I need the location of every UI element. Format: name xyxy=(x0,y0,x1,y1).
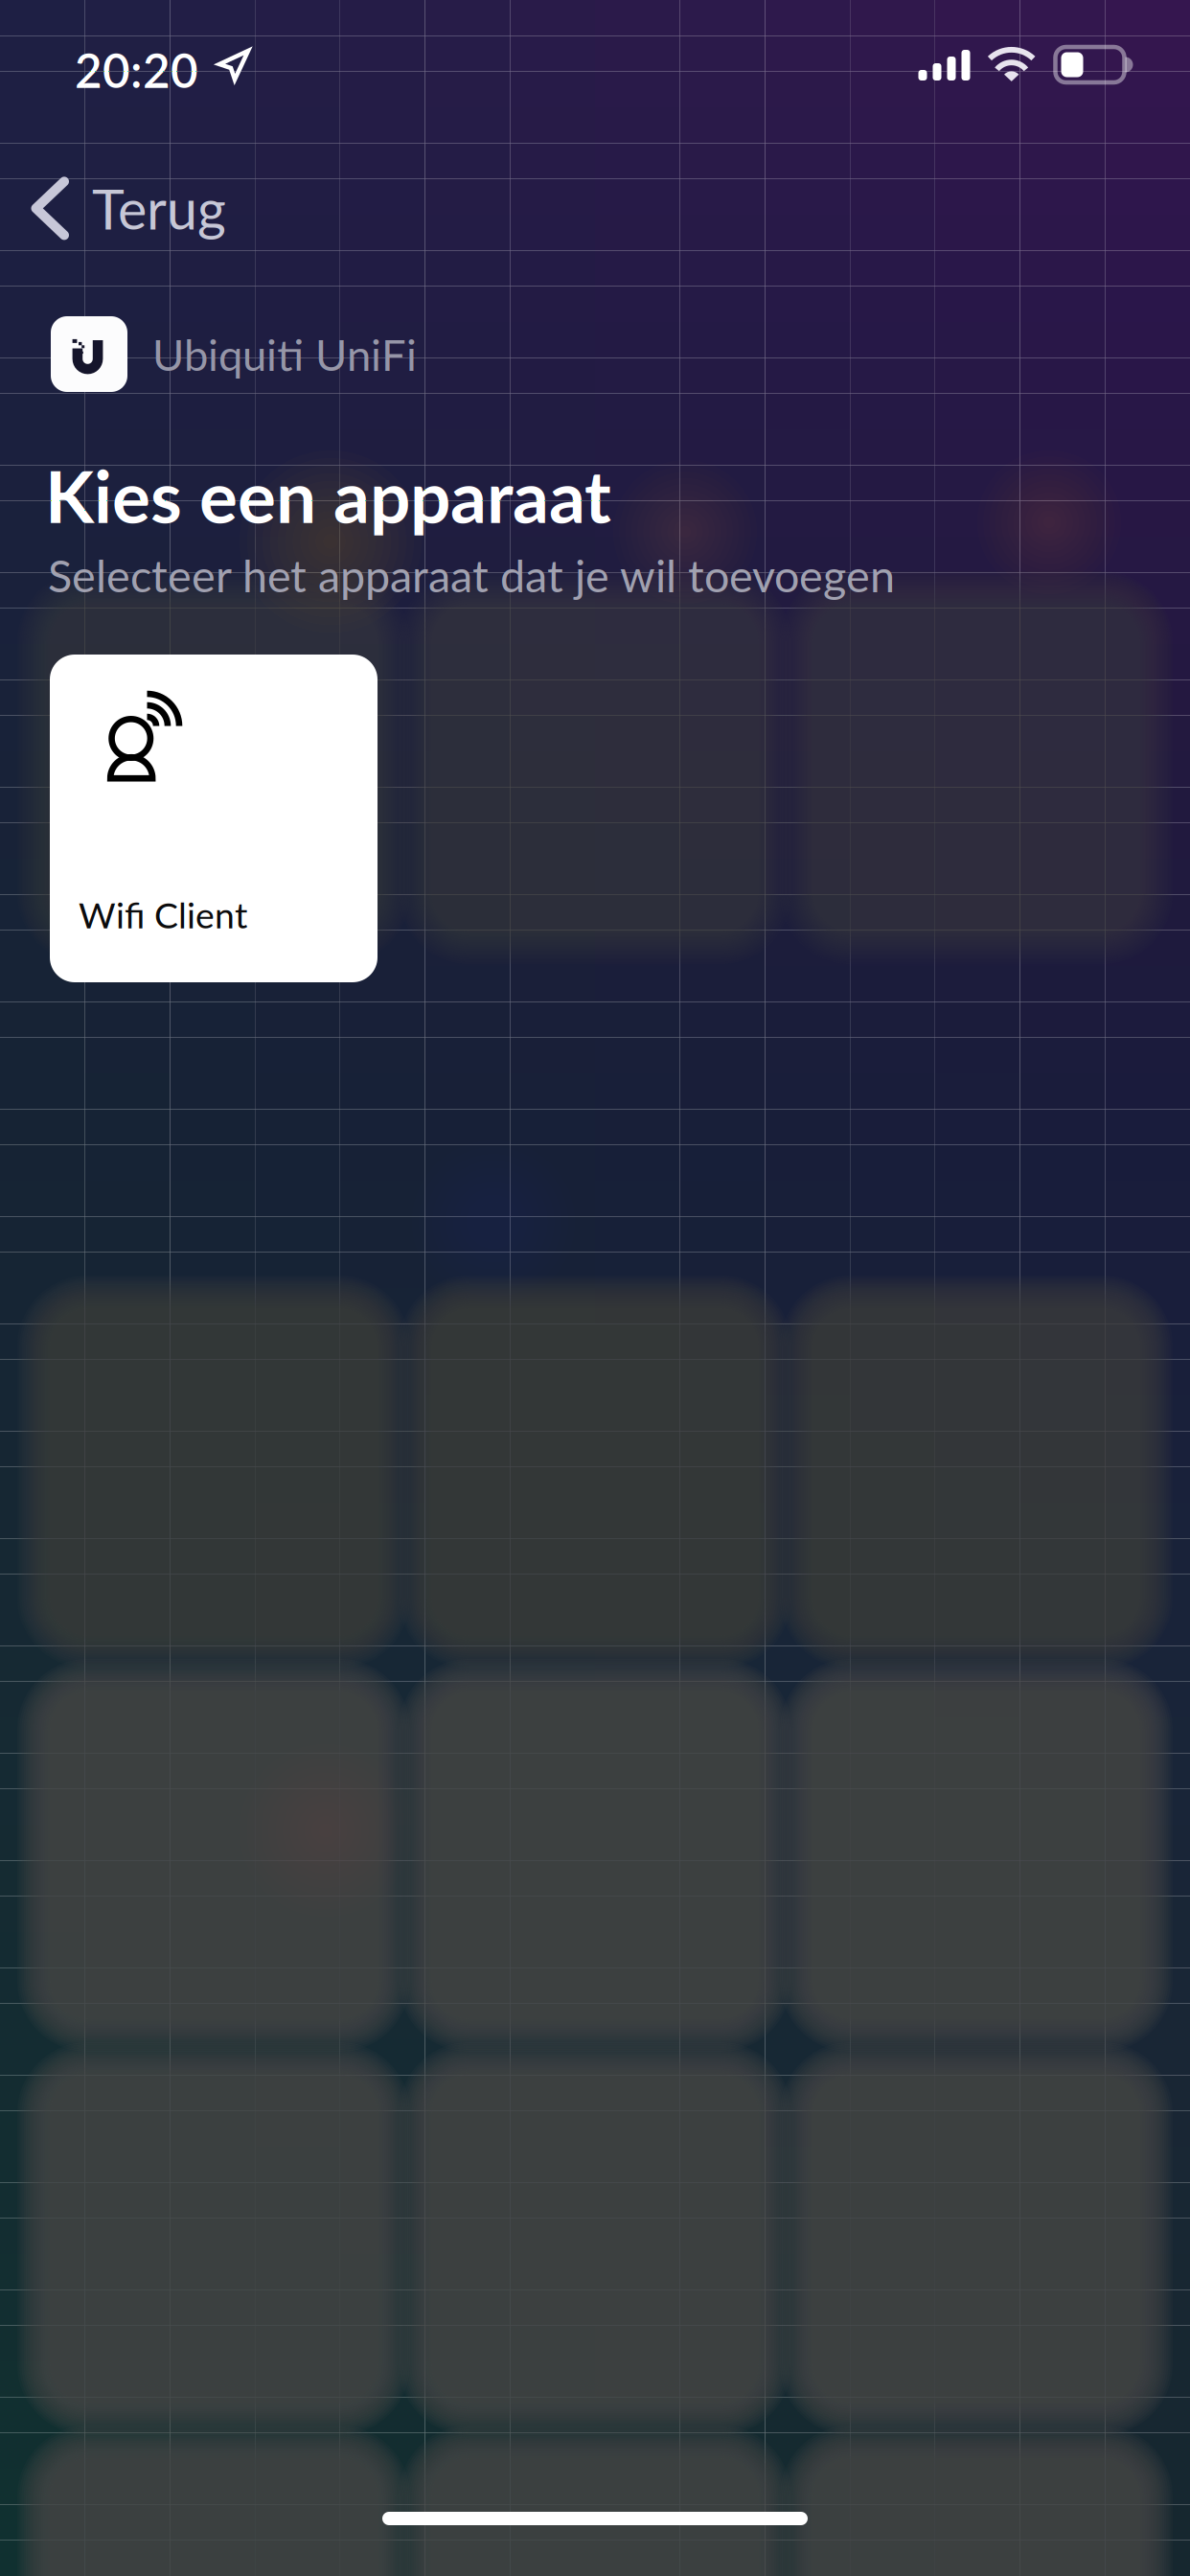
staticText: 20:20 xyxy=(75,41,198,98)
staticText: Kies een apparaat xyxy=(45,452,611,538)
staticText: Wifi Client xyxy=(79,893,247,936)
button[interactable]: Terug xyxy=(0,154,261,262)
staticText: Terug xyxy=(92,175,226,241)
staticText: Selecteer het apparaat dat je wil toevoe… xyxy=(48,548,895,602)
staticText: Ubiquiti UniFi xyxy=(152,328,417,380)
button[interactable]: Wifi Client xyxy=(50,655,378,982)
